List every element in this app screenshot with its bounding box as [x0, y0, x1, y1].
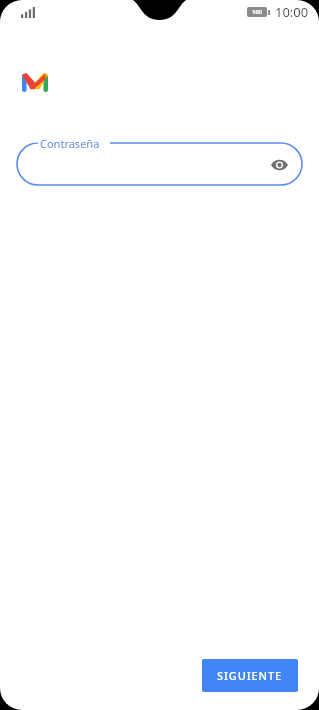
staticText: 100 — [252, 8, 263, 16]
button[interactable]: Contraseña — [17, 135, 302, 191]
button[interactable]: SIGUIENTE — [202, 659, 298, 692]
staticText: 10:00 — [275, 3, 309, 21]
button[interactable]: Mostrar contraseña — [267, 153, 291, 177]
staticText: SIGUIENTE — [217, 668, 283, 683]
staticText: Contraseña — [40, 136, 100, 151]
